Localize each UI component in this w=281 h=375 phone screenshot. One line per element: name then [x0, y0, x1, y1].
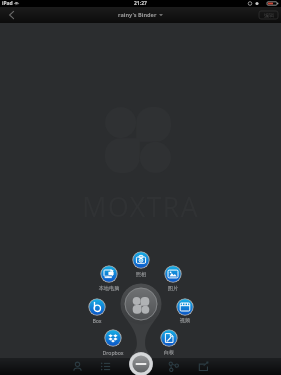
staticText: Dropbox [89, 349, 137, 356]
button[interactable]: Export [192, 358, 214, 375]
staticText: 白板 [145, 349, 193, 356]
staticText: Box [73, 317, 121, 324]
staticText: 本地电脑 [85, 285, 133, 292]
button[interactable]: 本地电脑 [100, 265, 118, 283]
staticText: iPad [2, 0, 13, 7]
button[interactable]: Moxtra menu [120, 283, 162, 325]
staticText: 图片 [149, 285, 197, 292]
button[interactable]: Share [162, 358, 184, 375]
button[interactable]: rainy's Binder [118, 11, 163, 19]
button[interactable]: Back [0, 7, 24, 23]
button[interactable]: 编辑 [259, 11, 278, 19]
button[interactable]: Box [88, 298, 106, 316]
staticText: rainy's Binder [118, 11, 157, 19]
staticText: 照相 [117, 271, 165, 278]
button[interactable]: 视频 [176, 298, 194, 316]
button[interactable]: Pages [94, 358, 116, 375]
staticText: 视频 [161, 317, 209, 324]
button[interactable]: Close menu [129, 352, 153, 375]
button[interactable]: Dropbox [104, 329, 122, 347]
staticText: 编辑 [264, 12, 274, 18]
staticText: 21:27 [134, 0, 147, 7]
button[interactable]: 白板 [160, 329, 178, 347]
button[interactable]: Contacts [66, 358, 88, 375]
button[interactable]: 图片 [164, 265, 182, 283]
button[interactable]: 照相 [132, 251, 150, 269]
